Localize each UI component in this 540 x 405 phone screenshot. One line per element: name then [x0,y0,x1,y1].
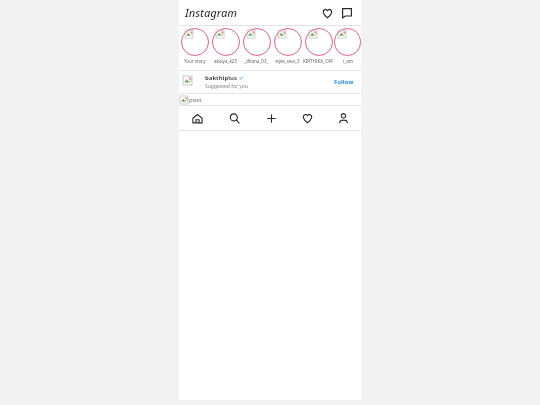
button[interactable]: Activity [289,106,325,130]
staticText: style_siva_3 [275,58,300,64]
button[interactable]: Home [179,106,216,130]
button[interactable]: akaiya_k25 [210,27,241,64]
button[interactable]: Profile [325,106,361,130]
staticText: _dhana_03_ [244,58,269,64]
button[interactable]: Messages [339,5,355,21]
button[interactable]: i_am [334,27,361,64]
staticText: bakthiplus [205,74,237,82]
button[interactable]: style_siva_3 [272,27,303,64]
button[interactable]: Search [216,106,253,130]
button[interactable]: Likes [319,5,335,21]
button[interactable]: Create [253,106,289,130]
staticText: Follow [334,78,354,86]
staticText: i_am [343,58,353,64]
button[interactable]: KIRTHIKA_OFF [303,27,334,64]
button[interactable]: bakthiplus [179,71,361,93]
staticText: Suggested for you [205,83,248,90]
button[interactable]: Your story [179,27,210,64]
button[interactable]: _dhana_03_ [241,27,272,64]
staticText: Your story [184,58,206,64]
staticText: KIRTHIKA_OFF [303,58,334,64]
staticText: post [189,96,202,104]
button[interactable]: Follow [331,76,357,88]
button[interactable]: Instagram [185,5,238,20]
staticText: akaiya_k25 [214,58,237,64]
